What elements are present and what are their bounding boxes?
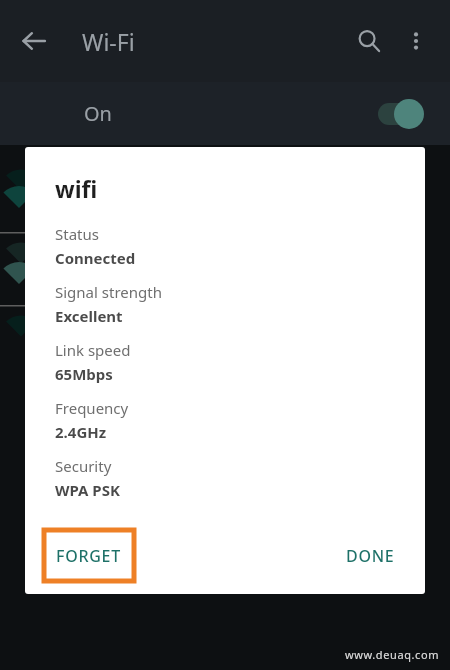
button[interactable]: More options <box>394 19 438 63</box>
button[interactable]: Back <box>8 15 60 67</box>
button[interactable]: FORGET <box>56 545 121 567</box>
staticText: wifi <box>55 173 98 204</box>
staticText: WPA PSK <box>55 480 120 500</box>
button[interactable]: Search <box>344 16 394 66</box>
button[interactable]: On <box>0 82 450 145</box>
staticText: On <box>84 100 112 127</box>
staticText: Frequency <box>55 398 129 418</box>
staticText: Signal strength <box>55 282 162 302</box>
staticText: www.deuaq.com <box>345 647 440 662</box>
staticText: Excellent <box>55 306 123 326</box>
button[interactable]: DONE <box>346 545 395 567</box>
button[interactable]: Search <box>344 16 394 66</box>
staticText: DONE <box>346 545 395 567</box>
staticText: 2.4GHz <box>55 422 107 442</box>
button[interactable] <box>0 219 450 292</box>
staticText: On <box>84 101 112 128</box>
staticText: Wi-Fi <box>82 26 135 57</box>
staticText: Wi-Fi <box>82 26 135 57</box>
button[interactable]: More options <box>394 19 438 63</box>
staticText: Connected <box>55 248 136 268</box>
staticText: FORGET <box>56 545 121 567</box>
button[interactable] <box>0 292 450 365</box>
button[interactable] <box>0 146 450 219</box>
button[interactable]: Back <box>8 15 60 67</box>
staticText: Status <box>55 224 99 244</box>
staticText: Security <box>55 456 112 476</box>
button[interactable]: On <box>0 82 450 146</box>
staticText: 65Mbps <box>55 364 113 384</box>
staticText: Link speed <box>55 340 131 360</box>
